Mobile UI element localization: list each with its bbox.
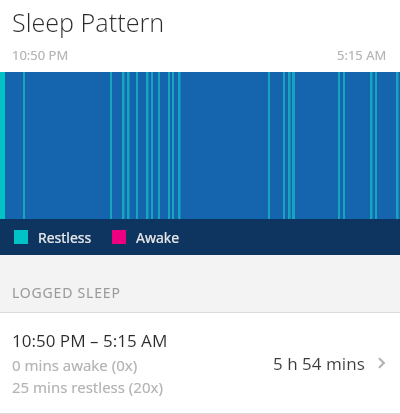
staticText: 10:50 PM (12, 46, 69, 64)
staticText: Restless (38, 228, 92, 247)
staticText: 5:15 AM (337, 46, 387, 64)
button[interactable]: 10:50 PM – 5:15 AM (0, 313, 400, 413)
staticText: 25 mins restless (20x) (12, 377, 163, 397)
button[interactable]: Sleep pattern chart (0, 72, 400, 219)
staticText: 10:50 PM – 5:15 AM (12, 329, 168, 352)
staticText: Sleep Pattern (12, 5, 165, 39)
staticText: 5 h 54 mins (273, 352, 365, 375)
staticText: LOGGED SLEEP (12, 283, 121, 302)
staticText: 0 mins awake (0x) (12, 355, 138, 375)
staticText: Awake (136, 228, 180, 247)
